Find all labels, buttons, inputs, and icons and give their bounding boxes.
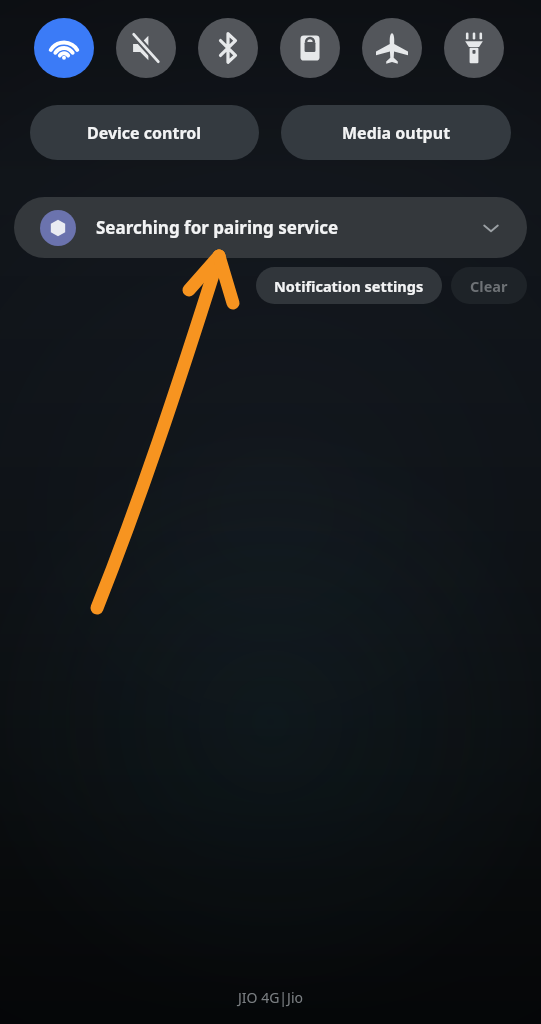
button[interactable]: Device control [30, 105, 259, 160]
button[interactable]: Mute [116, 18, 176, 78]
button[interactable]: Media output [281, 105, 511, 160]
staticText: JIO 4G|Jio [238, 988, 303, 1007]
button[interactable]: Bluetooth [198, 18, 258, 78]
staticText: Device control [87, 122, 202, 144]
staticText: Searching for pairing service [96, 216, 339, 239]
button[interactable]: Airplane mode [362, 18, 422, 78]
staticText: Clear [470, 276, 508, 296]
button[interactable]: Clear [451, 267, 527, 304]
button[interactable]: Searching for pairing service [14, 197, 527, 258]
button[interactable]: Expand notification [477, 214, 505, 242]
staticText: Media output [342, 122, 451, 144]
button[interactable]: Flashlight [444, 18, 504, 78]
button[interactable]: Screen lock [280, 18, 340, 78]
button[interactable]: Notification settings [256, 267, 442, 304]
staticText: Notification settings [274, 276, 424, 296]
button[interactable]: Wi-Fi [34, 18, 94, 78]
